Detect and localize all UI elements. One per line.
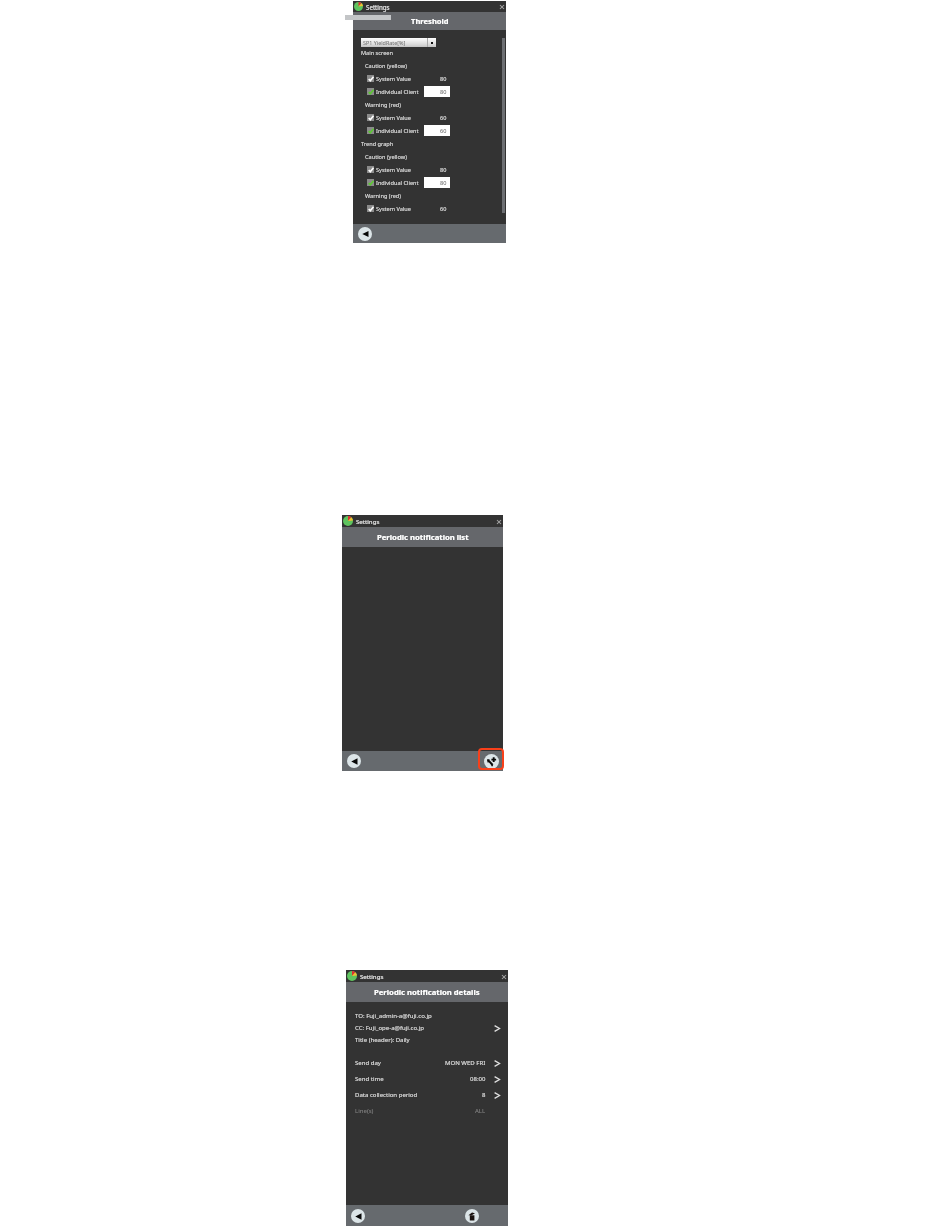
staticText: System Value [376,75,411,83]
staticText: Send day [355,1059,381,1067]
staticText: ALL [475,1107,486,1115]
button[interactable]: Line(s) [346,1103,508,1119]
staticText: Settings [360,972,384,980]
button[interactable]: Checkbox [353,176,506,189]
button[interactable]: Back [347,754,361,768]
staticText: Periodic notification list [377,532,469,542]
staticText: Line(s) [355,1107,374,1115]
staticText: 08:00 [470,1075,486,1083]
button[interactable]: Delete [465,1209,479,1223]
button[interactable]: Send time [346,1071,508,1087]
staticText: 60 [440,205,447,213]
button[interactable]: Send day [346,1055,508,1071]
staticText: Warning (red) [365,192,401,200]
button[interactable]: CC: Fuji_ope-a@fuji.co.jp [346,1022,508,1034]
button[interactable]: TO: Fuji_admin-a@fuji.co.jp [346,1010,508,1022]
staticText: 80 [440,88,447,96]
button[interactable]: Back [358,227,372,241]
button[interactable]: Checkbox [367,75,374,82]
button[interactable]: Checkbox [353,202,506,215]
staticText: Title (header): Daily [355,1036,410,1044]
button[interactable]: Data collection period [346,1087,508,1103]
button[interactable]: Add periodic notification [484,754,499,769]
button[interactable]: Checkbox [353,163,506,176]
staticText: System Value [376,114,411,122]
staticText: 80 [440,166,447,174]
staticText: Data collection period [355,1091,418,1099]
button[interactable]: Checkbox [353,111,506,124]
button[interactable]: Checkbox [367,179,374,186]
button[interactable]: Checkbox [367,166,374,173]
button[interactable]: Checkbox [353,85,506,98]
button[interactable]: Back [351,1209,365,1223]
staticText: 80 [440,179,447,187]
button[interactable]: Close [499,972,508,981]
staticText: MON WED FRI [445,1059,486,1067]
staticText: System Value [376,205,411,213]
staticText: Trend graph [361,140,394,148]
button[interactable]: Close [497,2,506,11]
button[interactable]: Title (header): Daily [346,1034,508,1046]
staticText: System Value [376,166,411,174]
staticText: Individual Client [376,127,419,135]
button[interactable]: Close [494,517,503,526]
staticText: Individual Client [376,179,419,187]
staticText: TO: Fuji_admin-a@fuji.co.jp [355,1012,432,1020]
button[interactable]: SP1 YieldRate[%] [361,38,436,47]
staticText: Periodic notification details [374,987,480,997]
staticText: 60 [440,127,447,135]
button[interactable]: Checkbox [367,205,374,212]
staticText: Send time [355,1075,384,1083]
button[interactable]: Checkbox [367,127,374,134]
button[interactable]: Checkbox [367,88,374,95]
staticText: Main screen [361,49,393,57]
staticText: Caution (yellow) [365,62,407,70]
staticText: SP1 YieldRate[%] [363,39,406,46]
button[interactable]: Checkbox [353,72,506,85]
staticText: 60 [440,114,447,122]
staticText: 80 [440,75,447,83]
staticText: Settings [366,3,390,11]
button[interactable]: Checkbox [367,114,374,121]
staticText: Individual Client [376,88,419,96]
button[interactable]: Checkbox [353,124,506,137]
staticText: Caution (yellow) [365,153,407,161]
staticText: Threshold [411,16,449,26]
staticText: Warning (red) [365,101,401,109]
staticText: 8 [482,1091,486,1099]
staticText: CC: Fuji_ope-a@fuji.co.jp [355,1024,424,1032]
staticText: Settings [356,517,380,525]
